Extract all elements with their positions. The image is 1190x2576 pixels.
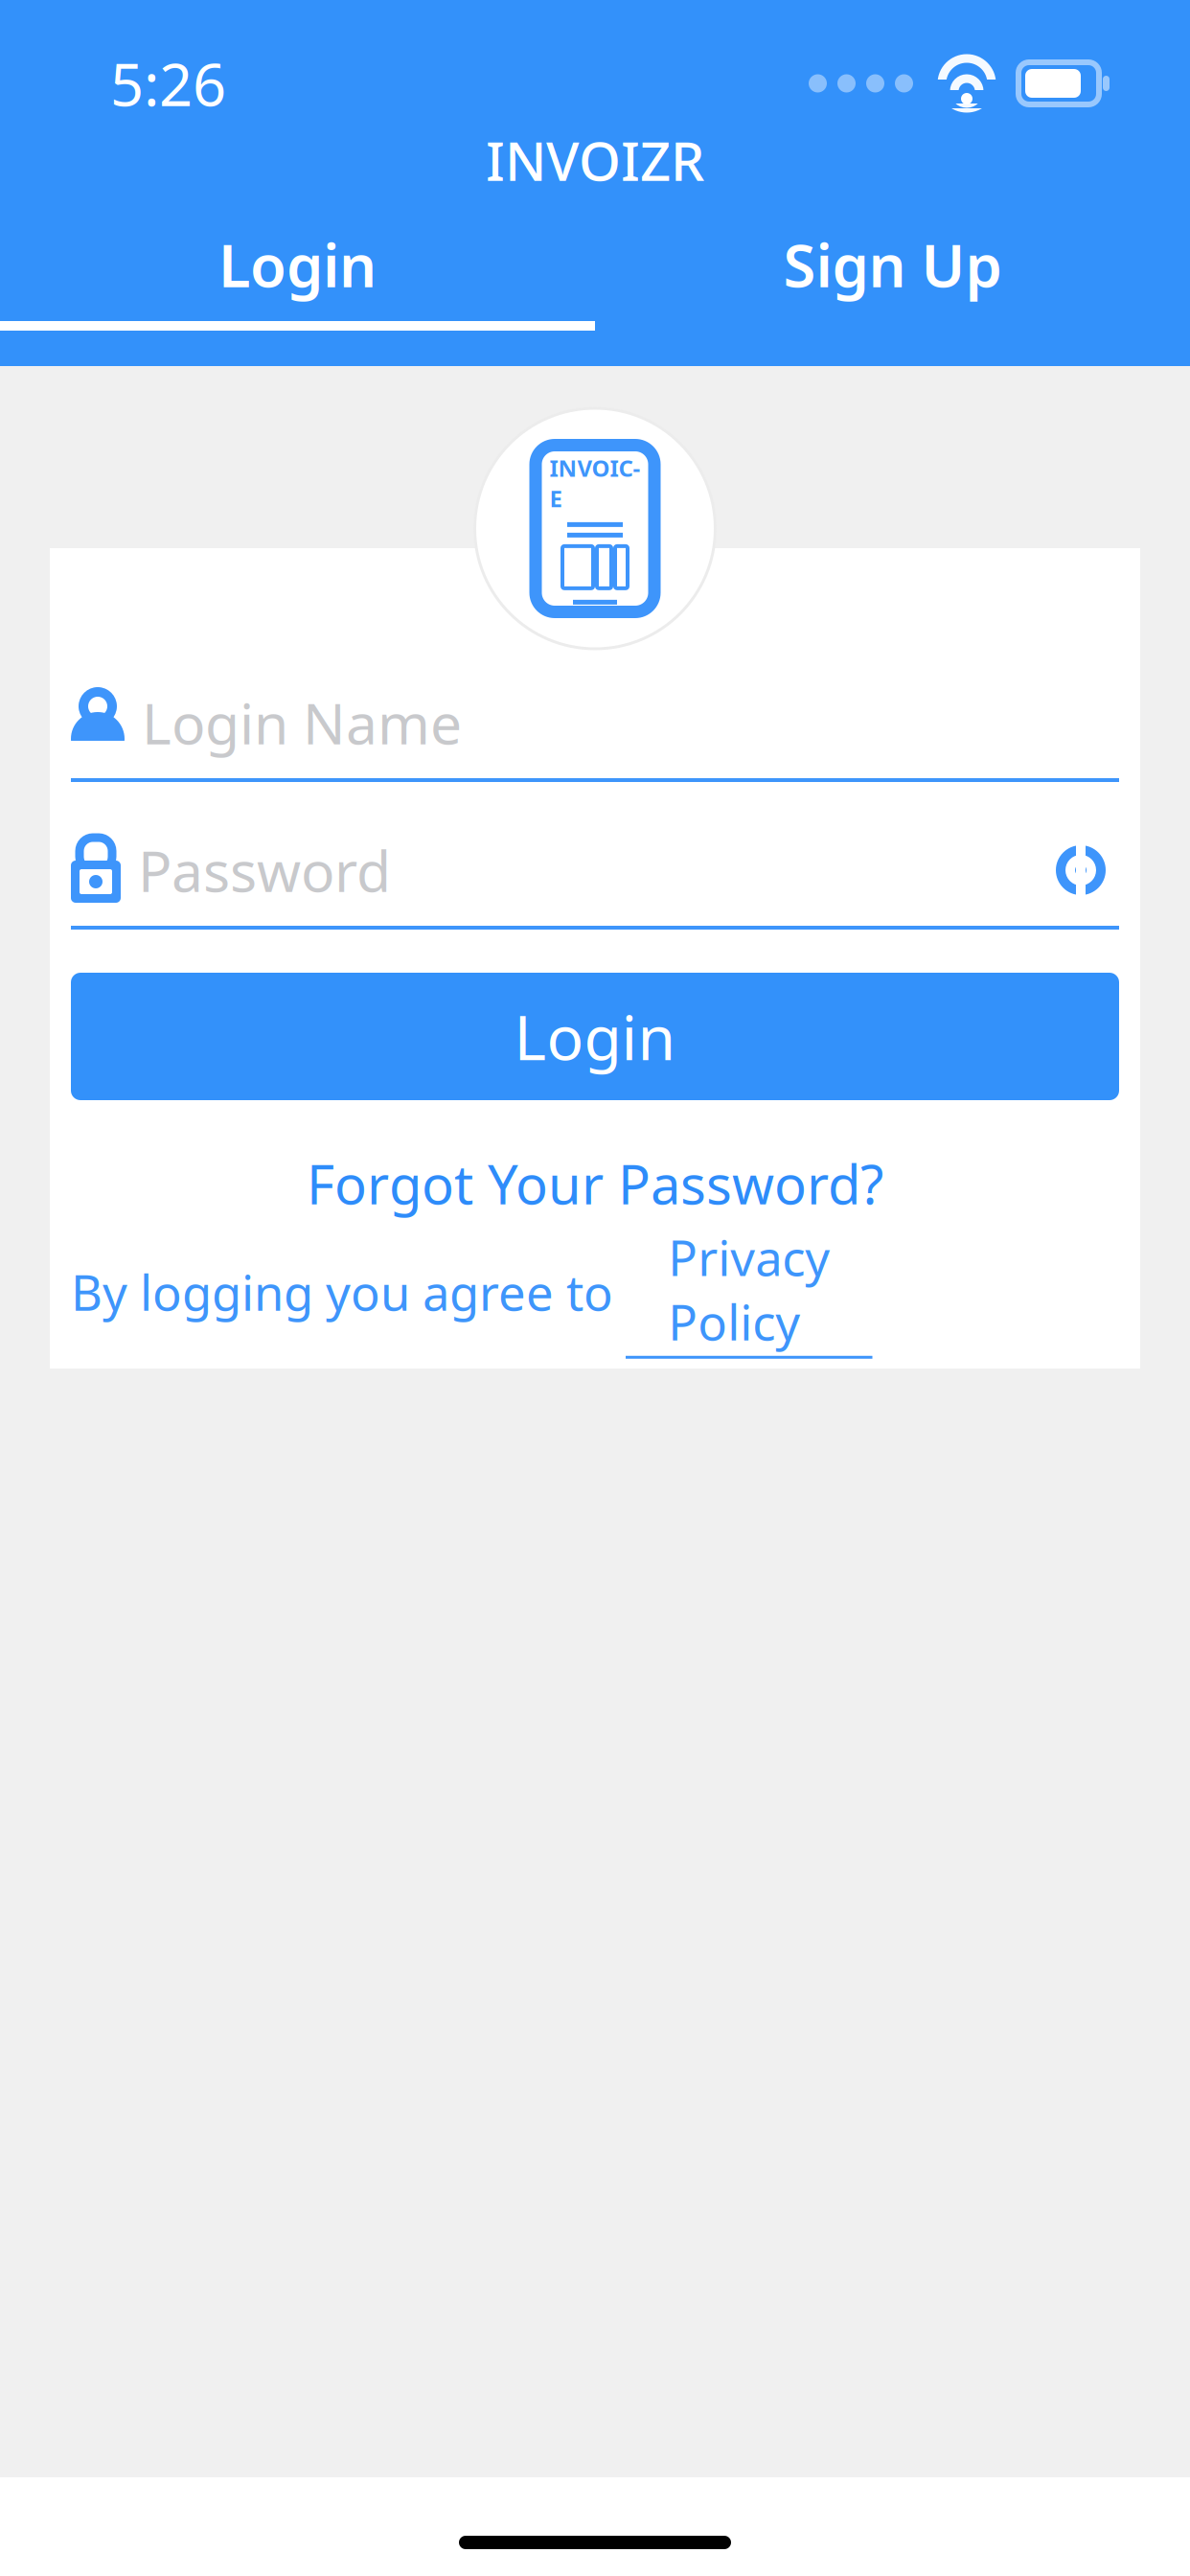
button[interactable]: Sign Up	[595, 229, 1190, 300]
staticText: Login	[514, 996, 676, 1077]
staticText: Login	[218, 225, 377, 304]
button[interactable]: Login	[0, 229, 595, 300]
staticText: Sign Up	[783, 225, 1002, 304]
staticText: Privacy Policy	[668, 1225, 830, 1354]
button[interactable]: By logging you agree to	[71, 1265, 1119, 1319]
staticText: INVOICE	[549, 452, 641, 513]
staticText: 5:26	[110, 44, 226, 122]
staticText: Password	[138, 833, 391, 907]
button[interactable]: Show password	[1042, 838, 1119, 903]
staticText: INVOIZR	[486, 124, 704, 196]
staticText: By logging you agree to	[71, 1260, 626, 1324]
staticText: Login Name	[142, 685, 462, 760]
button[interactable]: Login	[71, 973, 1119, 1100]
staticText: Forgot Your Password?	[307, 1148, 883, 1219]
button[interactable]: Forgot Your Password?	[71, 1156, 1119, 1211]
